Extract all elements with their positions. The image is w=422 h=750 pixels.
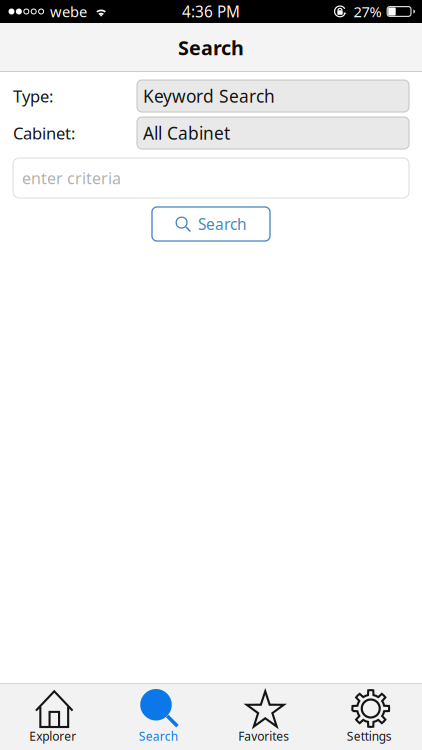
staticText: Explorer <box>29 728 76 744</box>
button[interactable]: All Cabinet <box>137 117 409 149</box>
button[interactable]: Search <box>105 683 211 750</box>
staticText: Search <box>139 728 178 744</box>
staticText: Type: <box>13 85 53 107</box>
staticText: Favorites <box>238 728 289 744</box>
staticText: Cabinet: <box>13 122 75 144</box>
staticText: 27% <box>354 1 382 21</box>
staticText: Keyword Search <box>143 84 275 108</box>
staticText: enter criteria <box>22 167 121 189</box>
staticText: All Cabinet <box>143 121 230 145</box>
staticText: webe <box>50 1 87 21</box>
button[interactable]: Settings <box>316 683 422 750</box>
button[interactable]: Explorer <box>0 683 105 750</box>
staticText: Search <box>198 213 247 235</box>
button[interactable]: Keyword Search <box>137 80 409 112</box>
staticText: Search <box>178 34 244 61</box>
staticText: 4:36 PM <box>182 1 240 22</box>
button[interactable]: Favorites <box>211 683 316 750</box>
button[interactable]: Search <box>152 207 270 241</box>
staticText: Settings <box>347 728 392 744</box>
